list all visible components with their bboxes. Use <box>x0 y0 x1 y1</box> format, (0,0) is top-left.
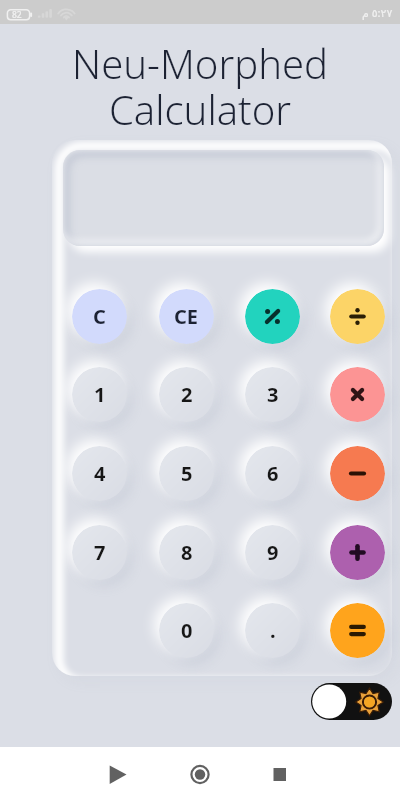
button[interactable]: 2 <box>159 367 214 422</box>
button[interactable]: 1 <box>72 367 127 422</box>
button[interactable]: 5 <box>159 446 214 501</box>
button[interactable]: 6 <box>245 446 300 501</box>
button[interactable]: Home <box>183 756 217 790</box>
button[interactable]: 3 <box>245 367 300 422</box>
staticText: 3 <box>267 381 279 408</box>
staticText: C <box>93 303 106 330</box>
staticText: 5 <box>181 460 193 487</box>
button[interactable]: 4 <box>72 446 127 501</box>
button[interactable]: Subtract <box>330 446 385 501</box>
button[interactable]: Divide <box>330 289 385 344</box>
staticText: 6 <box>267 460 279 487</box>
staticText: 9 <box>267 539 279 566</box>
staticText: 1 <box>94 381 106 408</box>
staticText: . <box>270 617 276 644</box>
staticText: Neu-Morphed Calculator <box>72 36 328 137</box>
staticText: 82 <box>12 9 22 21</box>
button[interactable]: Multiply <box>330 367 385 422</box>
button[interactable]: . <box>245 603 300 658</box>
staticText: 2 <box>181 381 193 408</box>
staticText: ٥:٢٧ م <box>362 5 393 20</box>
button[interactable]: C <box>72 289 127 344</box>
staticText: 7 <box>94 539 106 566</box>
button[interactable]: 8 <box>159 525 214 580</box>
button[interactable]: CE <box>159 289 214 344</box>
button[interactable]: Equals <box>330 603 385 658</box>
button[interactable]: Back <box>101 756 135 790</box>
button[interactable]: 7 <box>72 525 127 580</box>
button[interactable]: Toggle light and dark theme <box>311 683 392 720</box>
button[interactable]: 0 <box>159 603 214 658</box>
staticText: CE <box>174 303 199 330</box>
staticText: 8 <box>181 539 193 566</box>
staticText: 4 <box>94 460 106 487</box>
button[interactable]: Add <box>330 525 385 580</box>
button[interactable]: Percent <box>245 289 300 344</box>
staticText: 0 <box>181 617 193 644</box>
button[interactable]: 9 <box>245 525 300 580</box>
button[interactable]: Recents <box>263 756 297 790</box>
